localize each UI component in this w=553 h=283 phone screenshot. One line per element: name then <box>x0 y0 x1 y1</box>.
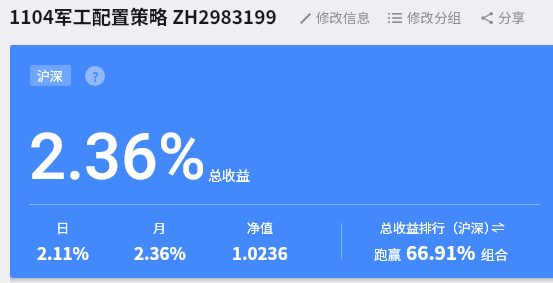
staticText: 修改分组 <box>407 7 461 27</box>
staticText: 2.36% <box>134 240 186 265</box>
staticText: 日 <box>56 218 70 237</box>
button[interactable]: 修改分组 <box>388 8 461 28</box>
staticText: 修改信息 <box>316 7 370 27</box>
staticText: 2.11% <box>37 240 89 265</box>
staticText: ? <box>92 67 99 86</box>
staticText: 沪深 <box>37 66 64 85</box>
staticText: 总收益排行（沪深） <box>380 218 498 237</box>
button[interactable]: 分享 <box>481 8 525 28</box>
button[interactable]: 修改信息 <box>300 8 370 28</box>
staticText: 1104军工配置策略 ZH2983199 <box>9 2 277 30</box>
staticText: 2.36% <box>29 119 206 195</box>
button[interactable]: 月 <box>115 218 205 268</box>
button[interactable]: 总收益排行（沪深） <box>347 218 543 270</box>
staticText: 总收益 <box>208 165 250 185</box>
button[interactable]: 日 <box>18 218 108 268</box>
staticText: 1.0236 <box>232 240 288 265</box>
button[interactable]: 帮助 <box>85 66 105 86</box>
staticText: 分享 <box>498 7 525 27</box>
staticText: 66.91% <box>406 238 476 266</box>
staticText: 月 <box>153 218 167 237</box>
button[interactable]: 沪深 <box>30 65 71 86</box>
staticText: 跑赢 <box>374 244 401 264</box>
staticText: 净值 <box>247 218 274 237</box>
button[interactable]: 净值 <box>215 218 305 268</box>
staticText: 组合 <box>481 244 508 264</box>
